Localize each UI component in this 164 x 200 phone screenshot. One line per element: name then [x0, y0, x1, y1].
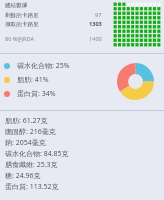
- button[interactable]: 糖: 24.96克: [5, 170, 164, 181]
- staticText: 蛋白質: 34%: [17, 89, 56, 99]
- staticText: 鈉: 2054毫克: [5, 138, 46, 148]
- button[interactable]: 脂肪: 61.27克: [5, 115, 164, 126]
- staticText: 97: [95, 11, 102, 19]
- button[interactable]: 剩餘的卡路里: [5, 11, 102, 19]
- button[interactable]: 攝取的卡路里: [5, 20, 102, 28]
- staticText: 80 %的RDA: [5, 35, 35, 43]
- other: Calorie progress grid: [113, 2, 161, 47]
- staticText: 剩餘的卡路里: [5, 12, 39, 19]
- button[interactable]: 膳食纖維: 25.3克: [5, 159, 164, 170]
- staticText: 蛋白質: 113.52克: [5, 182, 59, 192]
- staticText: 碳水化合物: 84.85克: [5, 149, 69, 159]
- staticText: 1400: [89, 35, 102, 43]
- other: Macronutrient chart: [117, 63, 154, 100]
- button[interactable]: 80 %的RDA: [5, 35, 102, 43]
- staticText: 1303: [89, 20, 102, 28]
- staticText: 膳食纖維: 25.3克: [5, 160, 58, 170]
- staticText: 糖: 24.96克: [5, 171, 41, 181]
- staticText: 碳水化合物: 25%: [17, 61, 70, 71]
- staticText: 攝取的卡路里: [5, 21, 39, 28]
- button[interactable]: 碳水化合物: 84.85克: [5, 148, 164, 159]
- button[interactable]: 鈉: 2054毫克: [5, 137, 164, 148]
- staticText: 膽固醇: 216毫克: [5, 127, 56, 137]
- staticText: 脂肪: 41%: [17, 75, 49, 85]
- button[interactable]: 膽固醇: 216毫克: [5, 126, 164, 137]
- staticText: 總結數據: [5, 2, 28, 9]
- button[interactable]: 碳水化合物: 25%: [4, 61, 70, 71]
- button[interactable]: 蛋白質: 113.52克: [5, 181, 164, 192]
- button[interactable]: 蛋白質: 34%: [4, 89, 56, 99]
- staticText: 脂肪: 61.27克: [5, 116, 48, 126]
- button[interactable]: 脂肪: 41%: [4, 75, 49, 85]
